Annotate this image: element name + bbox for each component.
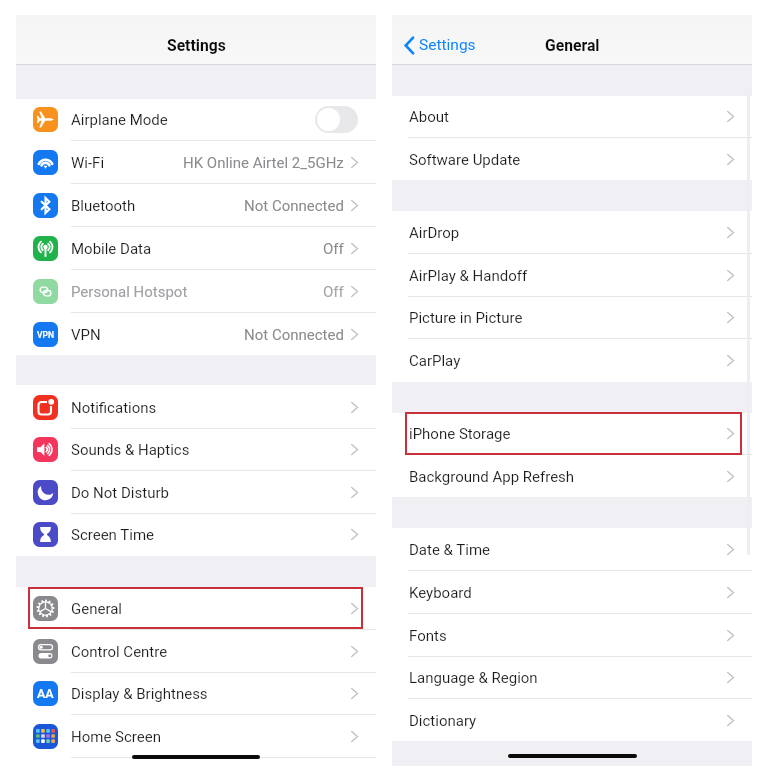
staticText: Bluetooth — [71, 197, 136, 215]
staticText: Settings — [167, 36, 226, 54]
button[interactable]: Fonts — [392, 614, 752, 657]
staticText: Personal Hotspot — [71, 283, 188, 301]
staticText: AirPlay & Handoff — [409, 267, 528, 285]
staticText: Notifications — [71, 399, 157, 417]
staticText: Language & Region — [409, 669, 538, 687]
staticText: Picture in Picture — [409, 309, 523, 327]
staticText: Fonts — [409, 627, 447, 645]
button[interactable]: Do Not Disturb — [16, 471, 376, 514]
button[interactable]: Bluetooth — [16, 184, 376, 227]
staticText: Dictionary — [409, 712, 477, 730]
staticText: Settings — [419, 36, 476, 54]
button[interactable]: Mobile Data — [16, 227, 376, 270]
staticText: Off — [323, 240, 344, 258]
staticText: Sounds & Haptics — [71, 441, 190, 459]
staticText: Keyboard — [409, 584, 472, 602]
button[interactable]: AirPlay & Handoff — [392, 254, 752, 297]
button[interactable]: Wi-Fi — [16, 141, 376, 184]
staticText: About — [409, 108, 449, 126]
button[interactable]: Notifications — [16, 386, 376, 429]
button[interactable]: Background App Refresh — [392, 455, 752, 498]
button[interactable]: Picture in Picture — [392, 296, 752, 339]
button[interactable]: Keyboard — [392, 571, 752, 614]
staticText: Not Connected — [244, 197, 344, 215]
button[interactable]: About — [392, 95, 752, 138]
staticText: Not Connected — [244, 326, 344, 344]
button[interactable]: Control Centre — [16, 630, 376, 673]
staticText: Wi-Fi — [71, 154, 105, 172]
button[interactable]: General — [16, 587, 376, 630]
button[interactable]: Date & Time — [392, 528, 752, 571]
staticText: Do Not Disturb — [71, 484, 169, 502]
other: Toggle Airplane Mode — [315, 106, 358, 133]
button[interactable]: Back to Settings — [405, 36, 476, 54]
staticText: General — [545, 36, 600, 54]
button[interactable]: Airplane Mode — [16, 98, 376, 141]
staticText: Display & Brightness — [71, 685, 208, 703]
button[interactable]: AirDrop — [392, 211, 752, 254]
button[interactable]: iPhone Storage — [392, 412, 752, 455]
staticText: Software Update — [409, 151, 521, 169]
staticText: Off — [323, 283, 344, 301]
staticText: Home Screen — [71, 728, 161, 746]
staticText: AA — [37, 686, 54, 701]
staticText: HK Online Airtel 2_5GHz — [183, 154, 344, 172]
button[interactable]: Screen Time — [16, 513, 376, 556]
staticText: Mobile Data — [71, 240, 152, 258]
staticText: VPN — [71, 326, 101, 344]
staticText: Airplane Mode — [71, 111, 168, 129]
staticText: Screen Time — [71, 526, 155, 544]
button[interactable]: Personal Hotspot — [16, 270, 376, 313]
staticText: AirDrop — [409, 224, 460, 242]
staticText: CarPlay — [409, 352, 461, 370]
staticText: VPN — [37, 330, 54, 340]
staticText: iPhone Storage — [409, 425, 511, 443]
button[interactable]: Sounds & Haptics — [16, 428, 376, 471]
button[interactable]: VPN — [16, 313, 376, 356]
staticText: General — [71, 600, 123, 618]
staticText: Control Centre — [71, 643, 168, 661]
button[interactable]: AA — [16, 672, 376, 715]
button[interactable]: Language & Region — [392, 656, 752, 699]
staticText: Background App Refresh — [409, 468, 575, 486]
button[interactable]: Home Screen — [16, 715, 376, 758]
button[interactable]: CarPlay — [392, 339, 752, 382]
staticText: Date & Time — [409, 541, 491, 559]
button[interactable]: Software Update — [392, 138, 752, 181]
button[interactable]: Dictionary — [392, 699, 752, 742]
